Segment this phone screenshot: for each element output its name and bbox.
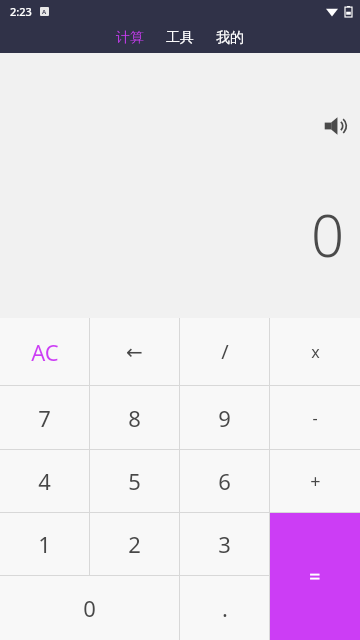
button[interactable]: ← [90,318,179,385]
staticText: 6 [218,466,231,496]
staticText: 我的 [216,29,244,47]
staticText: 工具 [166,29,194,47]
button[interactable]: x [270,318,360,385]
button[interactable]: 计算 [108,26,152,50]
staticText: AC [31,337,59,367]
button[interactable]: / [180,318,269,385]
button[interactable]: 0 [0,576,179,640]
button[interactable]: 6 [180,450,269,512]
button[interactable]: 2 [90,513,179,575]
staticText: 4 [38,466,51,496]
button[interactable]: 3 [180,513,269,575]
staticText: . [222,593,228,623]
staticText: / [221,338,229,365]
button[interactable]: 4 [0,450,89,512]
staticText: 5 [128,466,141,496]
button[interactable]: 7 [0,386,89,449]
button[interactable]: 5 [90,450,179,512]
staticText: A [42,8,47,16]
staticText: 8 [128,403,141,433]
staticText: = [309,563,321,590]
staticText: 0 [310,195,344,274]
staticText: 9 [218,403,231,433]
staticText: 计算 [116,29,144,47]
button[interactable]: . [180,576,269,640]
button[interactable]: = [270,513,360,640]
button[interactable]: Sound [323,115,349,137]
staticText: + [310,469,321,494]
staticText: 1 [38,529,51,559]
button[interactable]: - [270,386,360,449]
staticText: ← [126,340,143,363]
button[interactable]: 8 [90,386,179,449]
staticText: 3 [218,529,231,559]
button[interactable]: + [270,450,360,512]
button[interactable]: 工具 [158,26,202,50]
button[interactable]: 1 [0,513,89,575]
staticText: 7 [38,403,51,433]
button[interactable]: 9 [180,386,269,449]
staticText: 2:23 [10,4,32,19]
staticText: 2 [128,529,141,559]
staticText: 0 [83,593,96,623]
button[interactable]: AC [0,318,89,385]
staticText: - [312,407,318,429]
staticText: x [311,341,320,363]
button[interactable]: 我的 [208,26,252,50]
